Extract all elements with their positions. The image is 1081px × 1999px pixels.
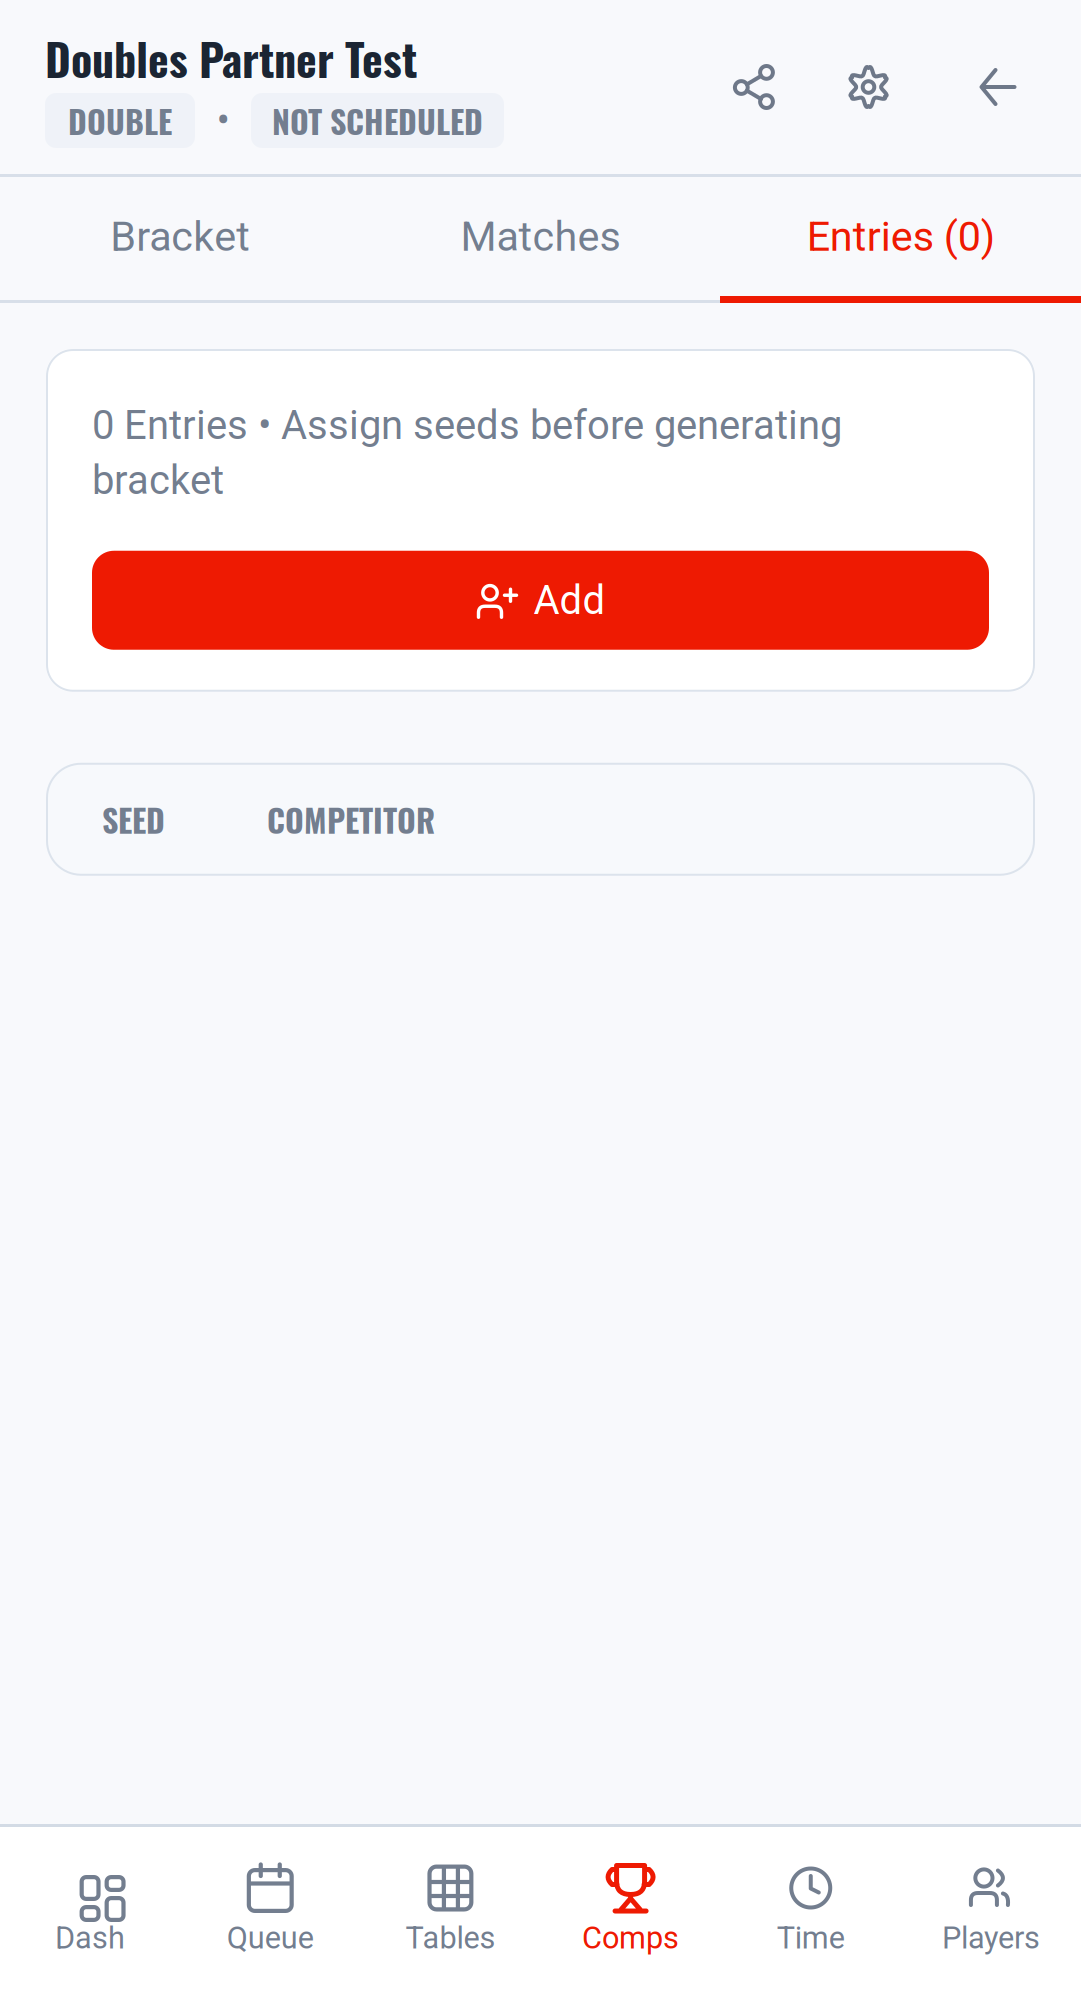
button[interactable]: Share: [710, 43, 798, 131]
staticText: •: [216, 97, 229, 144]
button[interactable]: Dash: [0, 1863, 180, 1956]
staticText: Matches: [460, 212, 620, 261]
staticText: DOUBLE: [68, 97, 172, 144]
staticText: COMPETITOR: [267, 795, 435, 843]
button[interactable]: Bracket: [0, 177, 360, 296]
staticText: Players: [942, 1920, 1040, 1956]
staticText: Doubles Partner Test: [45, 25, 417, 91]
staticText: NOT SCHEDULED: [272, 97, 483, 144]
staticText: Tables: [405, 1920, 495, 1956]
staticText: Dash: [55, 1920, 125, 1956]
staticText: SEED: [102, 795, 165, 843]
staticText: Bracket: [110, 212, 250, 261]
button[interactable]: Queue: [180, 1863, 360, 1956]
staticText: Queue: [227, 1920, 314, 1956]
button[interactable]: Entries (0): [721, 177, 1081, 296]
button[interactable]: Settings: [798, 43, 939, 131]
button[interactable]: Time: [721, 1863, 901, 1956]
staticText: Entries (0): [807, 212, 995, 261]
button[interactable]: Comps: [540, 1863, 721, 1956]
staticText: 0 Entries • Assign seeds before generati…: [92, 402, 842, 504]
staticText: Time: [777, 1920, 845, 1956]
staticText: Comps: [582, 1920, 679, 1956]
staticText: Add: [533, 577, 605, 624]
button[interactable]: Tables: [360, 1863, 540, 1956]
button[interactable]: Add: [92, 551, 989, 650]
button[interactable]: Players: [901, 1863, 1081, 1956]
button[interactable]: Matches: [360, 177, 721, 296]
button[interactable]: Back: [939, 43, 1057, 131]
